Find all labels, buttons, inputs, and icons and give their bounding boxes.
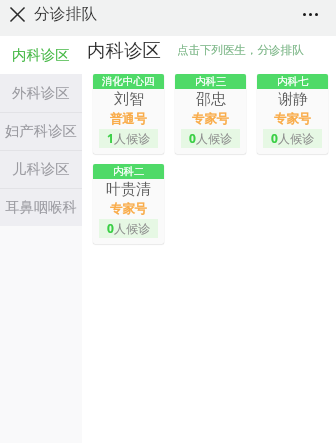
button[interactable]: 妇产科诊区 <box>0 112 82 150</box>
staticText: 叶贵清 <box>106 180 151 199</box>
button[interactable]: Close <box>4 1 30 27</box>
staticText: 刘智 <box>114 90 144 109</box>
staticText: 耳鼻咽喉科 <box>5 198 77 216</box>
staticText: 内科三 <box>195 75 227 88</box>
staticText: 0人候诊 <box>107 220 150 236</box>
button[interactable]: 内科诊区 <box>0 36 82 74</box>
staticText: 分诊排队 <box>34 4 98 24</box>
staticText: 0人候诊 <box>271 130 314 146</box>
staticText: 点击下列医生，分诊排队 <box>177 43 304 57</box>
staticText: 外科诊区 <box>12 84 70 102</box>
staticText: 邵忠 <box>196 90 226 109</box>
staticText: 专家号 <box>192 111 229 126</box>
button[interactable]: 外科诊区 <box>0 74 82 112</box>
button[interactable]: 耳鼻咽喉科 <box>0 188 82 226</box>
staticText: 普通号 <box>110 111 147 126</box>
staticText: 专家号 <box>110 201 147 216</box>
staticText: 内科二 <box>113 165 145 178</box>
staticText: 0人候诊 <box>189 130 232 146</box>
staticText: 1人候诊 <box>107 130 150 146</box>
staticText: 专家号 <box>274 111 311 126</box>
button[interactable]: 内科七 <box>257 74 328 154</box>
staticText: 内科诊区 <box>87 39 161 62</box>
button[interactable]: 消化中心四 <box>93 74 164 154</box>
staticText: 消化中心四 <box>102 75 155 88</box>
button[interactable]: 儿科诊区 <box>0 150 82 188</box>
staticText: 内科诊区 <box>12 46 70 64</box>
staticText: 儿科诊区 <box>12 160 70 178</box>
button[interactable]: More options <box>303 1 318 27</box>
button[interactable]: 内科二 <box>93 164 164 244</box>
staticText: 妇产科诊区 <box>5 122 77 140</box>
staticText: 内科七 <box>277 75 309 88</box>
button[interactable]: 内科三 <box>175 74 246 154</box>
staticText: 谢静 <box>278 90 308 109</box>
